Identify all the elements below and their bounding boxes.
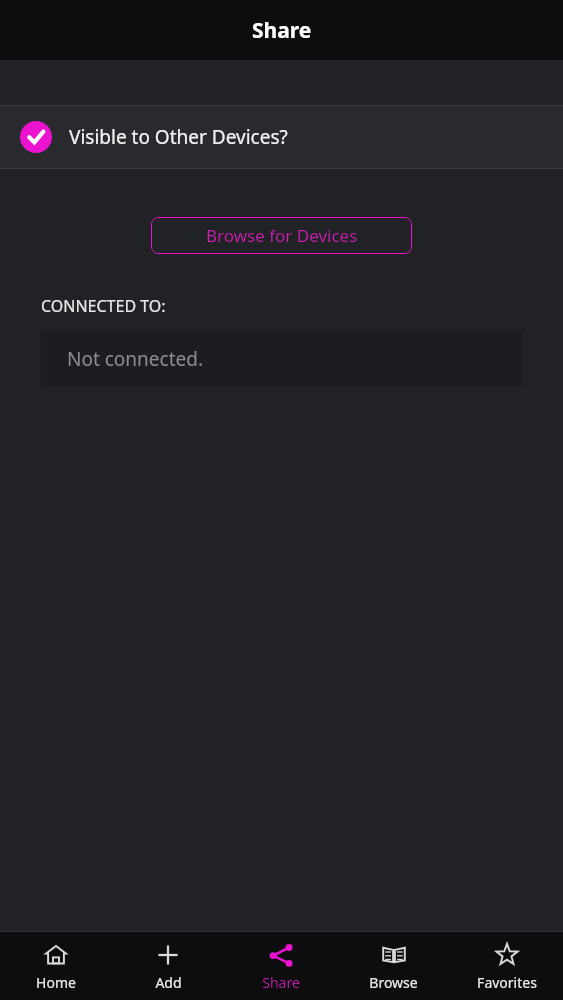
staticText: Home (36, 973, 76, 992)
staticText: Not connected. (67, 346, 204, 372)
button[interactable]: Browse for Devices (151, 217, 412, 254)
staticText: Add (155, 973, 182, 992)
staticText: Browse (369, 973, 418, 992)
button[interactable]: Not connected. (41, 330, 522, 387)
staticText: Share (252, 16, 312, 45)
button[interactable]: Add (112, 932, 224, 1000)
staticText: Share (262, 973, 300, 992)
button[interactable]: Share (224, 932, 337, 1000)
button[interactable]: Home (0, 932, 112, 1000)
button[interactable]: Browse (337, 932, 450, 1000)
staticText: Visible to Other Devices? (69, 124, 288, 150)
staticText: Favorites (477, 973, 537, 992)
button[interactable]: Favorites (450, 932, 563, 1000)
button[interactable]: Visible to Other Devices? (0, 106, 563, 168)
staticText: Browse for Devices (206, 224, 358, 247)
staticText: CONNECTED TO: (41, 295, 166, 317)
